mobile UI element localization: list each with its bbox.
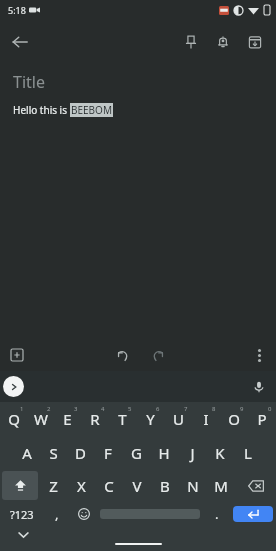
staticText: X [77,476,86,496]
button[interactable]: C [95,469,123,502]
staticText: . [215,505,219,523]
staticText: N [187,476,199,496]
button[interactable]: Back [5,27,35,57]
button[interactable]: Pin [176,27,206,57]
staticText: C [104,476,114,496]
button[interactable]: U [164,402,192,436]
button[interactable]: . [203,502,230,526]
staticText: , [55,505,59,523]
staticText: J [190,443,195,463]
staticText: ?123 [10,507,34,522]
button[interactable]: E [54,402,81,436]
staticText: A [22,443,32,463]
staticText: BEEBOM [71,103,112,117]
staticText: Title [13,71,45,93]
button[interactable]: Z [40,469,67,502]
staticText: F [104,443,112,463]
staticText: G [131,443,142,463]
button[interactable]: F [94,436,122,469]
button[interactable]: S [40,436,67,469]
button[interactable]: G [122,436,150,469]
staticText: L [244,443,252,463]
button[interactable]: O [220,402,248,436]
staticText: 9 [240,405,244,413]
staticText: 3 [74,405,78,413]
button[interactable]: H [150,436,178,469]
staticText: B [160,476,170,496]
staticText: 0 [268,405,272,413]
button[interactable]: A [13,436,40,469]
button[interactable]: Reminder [208,27,238,57]
button[interactable]: Enter [233,506,273,522]
button[interactable]: Archive [240,27,270,57]
button[interactable]: N [179,469,207,502]
button[interactable]: Y [136,402,164,436]
staticText: Y [146,409,155,429]
button[interactable]: , [43,502,70,526]
button[interactable]: V [123,469,151,502]
staticText: K [215,443,225,463]
staticText: 2 [47,405,51,413]
staticText: E [63,409,72,429]
button[interactable]: W [27,402,54,436]
button[interactable]: K [206,436,234,469]
button[interactable]: T [108,402,136,436]
staticText: 5:18 [8,4,26,16]
staticText: I [203,409,209,429]
button[interactable]: Redo [144,342,170,368]
button[interactable]: Hide keyboard [12,524,34,546]
staticText: H [158,443,170,463]
staticText: 5 [128,405,132,413]
staticText: R [90,409,100,429]
staticText: Z [49,476,58,496]
button[interactable]: L [234,436,262,469]
button[interactable]: Expand toolbar [3,376,24,397]
staticText: 1 [20,405,24,413]
staticText: Hello this is [13,103,70,117]
button[interactable]: R [81,402,108,436]
staticText: T [118,409,127,429]
staticText: W [34,409,48,429]
staticText: 8 [212,405,216,413]
button[interactable]: D [67,436,94,469]
staticText: Q [8,409,20,429]
button[interactable]: P [248,402,276,436]
button[interactable]: Emoji [70,502,97,526]
staticText: 7 [184,405,188,413]
button[interactable]: ?123 [0,502,43,526]
button[interactable]: X [67,469,95,502]
staticText: D [75,443,86,463]
staticText: S [49,443,58,463]
button[interactable]: M [207,469,235,502]
button[interactable]: Q [0,402,27,436]
staticText: U [173,409,184,429]
button[interactable]: Title [13,71,263,93]
staticText: O [228,409,240,429]
staticText: V [132,476,142,496]
staticText: P [257,409,267,429]
button[interactable]: Hello this is [13,103,263,117]
button[interactable]: Backspace [235,469,276,502]
button[interactable]: Undo [110,342,136,368]
button[interactable]: Shift [2,471,38,500]
button[interactable]: More options [246,342,272,368]
button[interactable]: Voice input [247,375,271,399]
button[interactable]: J [178,436,206,469]
button[interactable]: Add [4,342,30,368]
staticText: M [214,476,228,496]
button[interactable]: B [151,469,179,502]
staticText: 4 [101,405,105,413]
staticText: 6 [156,405,160,413]
button[interactable]: I [192,402,220,436]
